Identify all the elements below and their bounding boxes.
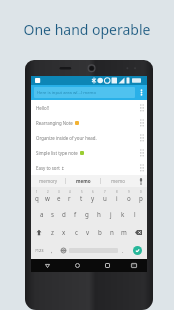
staticText: 8 <box>116 190 118 194</box>
button[interactable]: 1 <box>31 187 42 205</box>
button[interactable]: Reorder <box>136 145 147 160</box>
staticText: 5 <box>81 190 83 194</box>
staticText: c <box>75 228 78 236</box>
staticText: 0 <box>140 190 142 194</box>
button[interactable]: v <box>82 223 94 241</box>
button[interactable]: Voice input <box>135 175 147 187</box>
staticText: r <box>68 194 71 202</box>
staticText: Hello!! <box>36 105 50 111</box>
staticText: y <box>91 194 95 202</box>
staticText: e <box>57 194 61 202</box>
staticText: 2 <box>47 190 49 194</box>
button[interactable]: memo <box>101 175 135 187</box>
button[interactable]: k <box>117 205 129 223</box>
staticText: 7 <box>104 190 106 194</box>
staticText: a <box>40 210 44 218</box>
button[interactable]: , <box>47 241 57 259</box>
staticText: b <box>98 228 102 236</box>
staticText: 1 <box>36 190 38 194</box>
staticText: w <box>45 194 50 202</box>
staticText: m <box>121 228 127 236</box>
staticText: n <box>110 228 114 236</box>
staticText: Simple list type note <box>36 150 78 156</box>
staticText: q <box>35 194 39 202</box>
staticText: Easy to sort ↕ <box>36 165 65 171</box>
button[interactable]: f <box>69 205 81 223</box>
staticText: Here is input area w(...) memo <box>37 90 96 96</box>
button[interactable]: s <box>47 205 58 223</box>
staticText: j <box>110 210 112 218</box>
button[interactable]: z <box>47 223 58 241</box>
button[interactable]: Reorder <box>136 100 147 115</box>
staticText: 4 <box>69 190 71 194</box>
button[interactable]: 8 <box>111 187 123 205</box>
button[interactable]: Shift <box>31 223 47 241</box>
button[interactable]: 9 <box>123 187 135 205</box>
staticText: 3 <box>58 190 60 194</box>
staticText: h <box>97 210 101 218</box>
button[interactable]: More options <box>135 85 147 100</box>
button[interactable]: x <box>58 223 70 241</box>
button[interactable]: Recent apps <box>99 259 115 272</box>
staticText: ?123 <box>35 248 44 253</box>
button[interactable]: 6 <box>87 187 99 205</box>
button[interactable]: n <box>106 223 118 241</box>
button[interactable]: Done <box>133 246 142 255</box>
button[interactable]: 0 <box>135 187 147 205</box>
button[interactable]: j <box>105 205 117 223</box>
staticText: . <box>122 247 124 254</box>
button[interactable]: . <box>118 241 128 259</box>
button[interactable]: 5 <box>75 187 87 205</box>
button[interactable]: 2 <box>42 187 53 205</box>
button[interactable]: Home <box>69 259 85 272</box>
staticText: v <box>86 228 90 236</box>
button[interactable]: ?123 <box>31 241 47 259</box>
button[interactable]: 4 <box>64 187 75 205</box>
button[interactable]: 7 <box>99 187 111 205</box>
staticText: Organize inside of your head. <box>36 135 97 141</box>
staticText: One hand operable <box>0 20 174 39</box>
button[interactable]: h <box>93 205 105 223</box>
staticText: k <box>121 210 125 218</box>
staticText: s <box>51 210 54 218</box>
staticText: memo <box>76 178 91 184</box>
button[interactable]: m <box>118 223 130 241</box>
staticText: u <box>103 194 107 202</box>
staticText: memo <box>111 178 125 184</box>
staticText: Rearranging Note <box>36 120 73 126</box>
staticText: i <box>116 194 118 202</box>
button[interactable]: Here is input area w(...) memo <box>34 87 135 98</box>
button[interactable]: Backspace <box>130 223 147 241</box>
button[interactable]: Reorder <box>136 160 147 175</box>
button[interactable]: c <box>70 223 82 241</box>
button[interactable]: Organize inside of your head. <box>31 130 147 145</box>
button[interactable]: Hello!! <box>31 100 147 115</box>
staticText: d <box>62 210 66 218</box>
button[interactable]: Simple list type note <box>31 145 147 160</box>
button[interactable]: Easy to sort ↕ <box>31 160 147 175</box>
staticText: g <box>85 210 89 218</box>
button[interactable]: memory <box>31 175 65 187</box>
staticText: o <box>127 194 131 202</box>
button[interactable]: l <box>129 205 141 223</box>
button[interactable]: Change language <box>57 241 69 259</box>
staticText: 9 <box>128 190 130 194</box>
button[interactable]: Back <box>39 259 55 272</box>
button[interactable]: Reorder <box>136 130 147 145</box>
button[interactable]: Reorder <box>136 115 147 130</box>
button[interactable]: d <box>58 205 69 223</box>
staticText: 6 <box>92 190 94 194</box>
button[interactable]: b <box>94 223 106 241</box>
staticText: t <box>80 194 83 202</box>
button[interactable]: memo <box>66 175 100 187</box>
staticText: f <box>74 210 77 218</box>
staticText: , <box>51 247 53 254</box>
button[interactable]: a <box>36 205 47 223</box>
button[interactable]: Rearranging Note <box>31 115 147 130</box>
button[interactable]: 3 <box>53 187 64 205</box>
button[interactable]: g <box>81 205 93 223</box>
button[interactable]: Hide keyboard <box>126 259 142 272</box>
staticText: memory <box>39 178 58 184</box>
staticText: p <box>139 194 143 202</box>
